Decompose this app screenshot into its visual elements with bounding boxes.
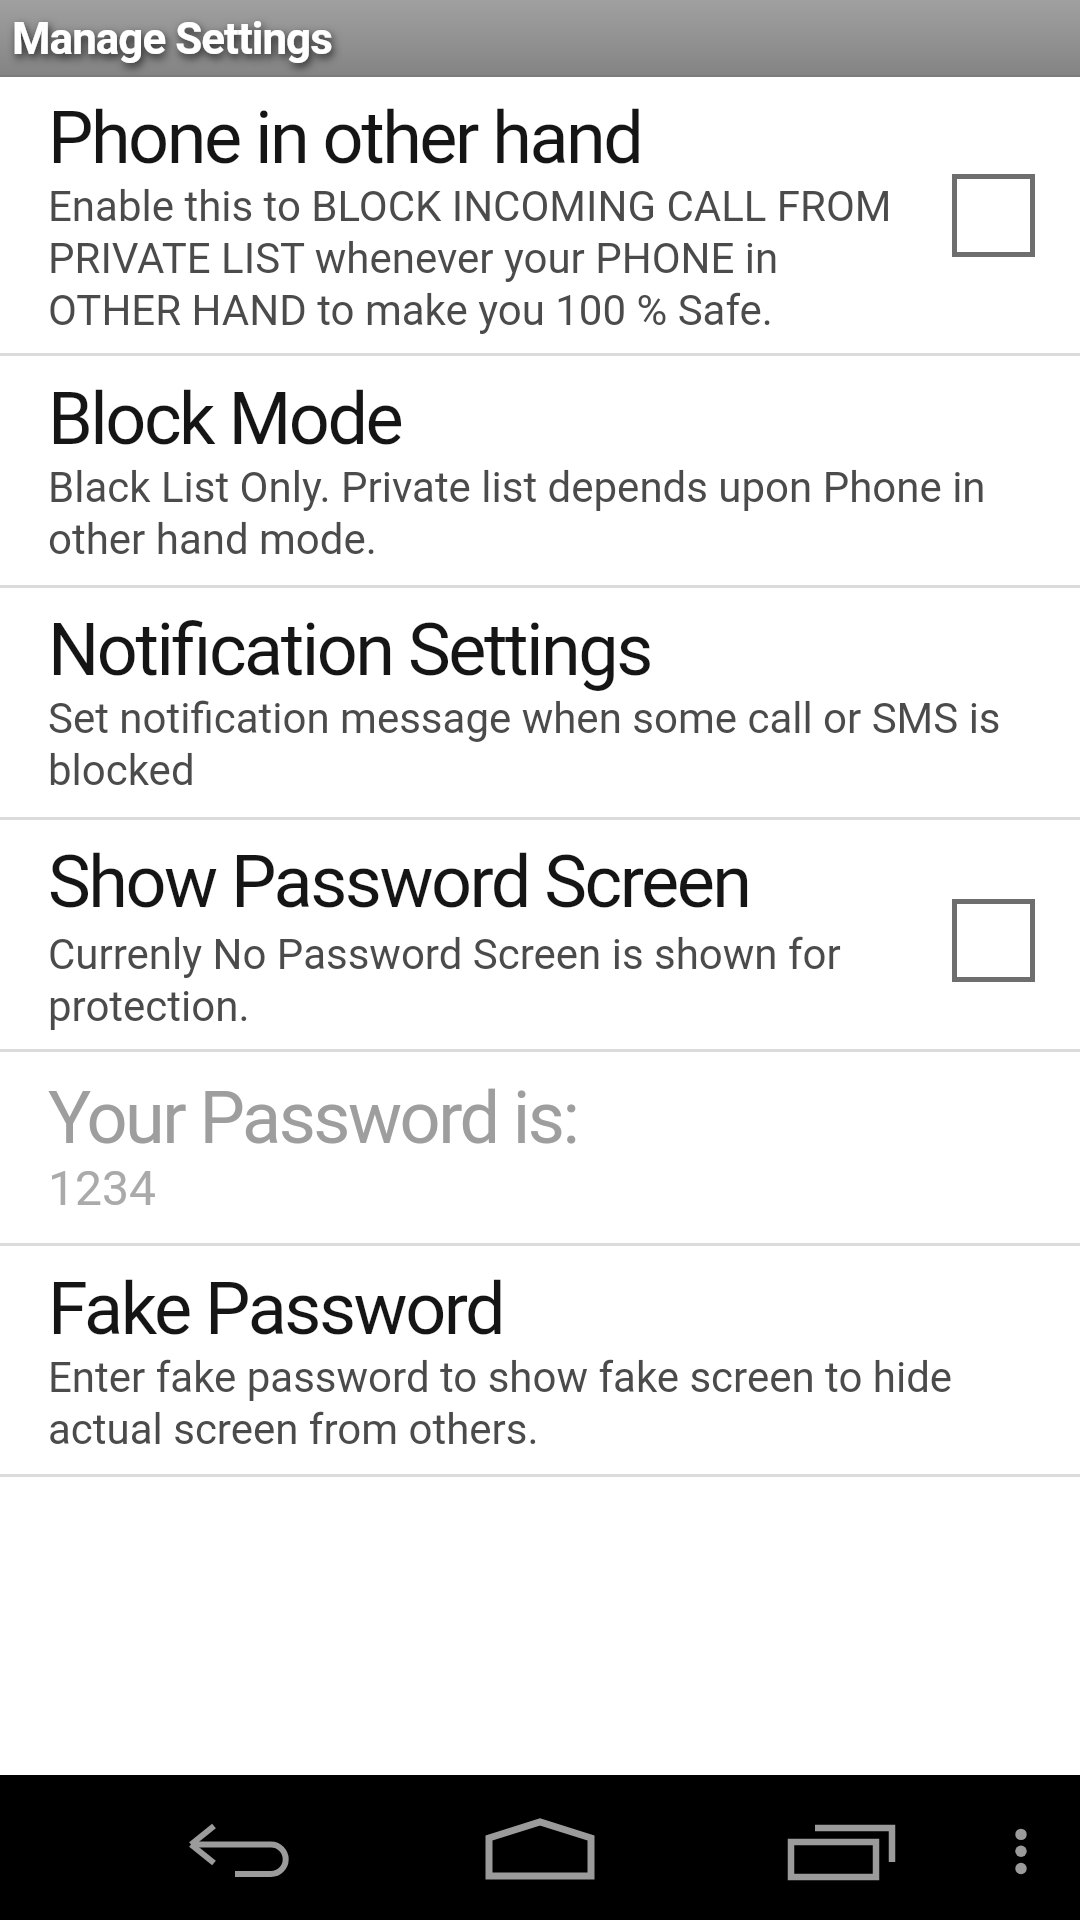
- button[interactable]: [952, 174, 1035, 257]
- staticText: Black List Only. Private list depends up…: [48, 463, 986, 564]
- button[interactable]: [460, 1790, 620, 1905]
- button[interactable]: Phone in other hand: [0, 77, 1080, 353]
- button[interactable]: Block Mode: [0, 356, 1080, 585]
- staticText: Show Password Screen: [48, 840, 750, 924]
- button[interactable]: Notification Settings: [0, 588, 1080, 817]
- staticText: Enable this to BLOCK INCOMING CALL FROM …: [48, 182, 892, 335]
- button[interactable]: [975, 1790, 1067, 1905]
- staticText: 1234: [48, 1160, 156, 1216]
- staticText: Notification Settings: [48, 608, 651, 692]
- button[interactable]: Your Password is:: [0, 1052, 1080, 1243]
- staticText: Currenly No Password Screen is shown for…: [48, 930, 841, 1031]
- staticText: Block Mode: [48, 377, 402, 461]
- staticText: Enter fake password to show fake screen …: [48, 1353, 953, 1454]
- button[interactable]: Show Password Screen: [0, 820, 1080, 1049]
- button[interactable]: Fake Password: [0, 1246, 1080, 1474]
- button[interactable]: [952, 899, 1035, 982]
- staticText: Fake Password: [48, 1267, 504, 1351]
- staticText: Set notification message when some call …: [48, 694, 1001, 795]
- staticText: Phone in other hand: [48, 96, 642, 180]
- button[interactable]: [160, 1790, 320, 1905]
- button[interactable]: [763, 1790, 923, 1905]
- staticText: Manage Settings: [12, 13, 332, 65]
- staticText: Your Password is:: [48, 1076, 578, 1160]
